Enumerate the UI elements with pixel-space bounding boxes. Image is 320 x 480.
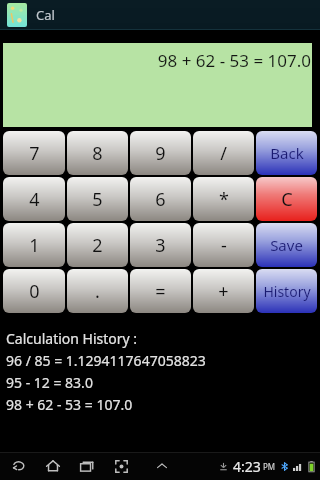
- staticText: /: [220, 141, 227, 166]
- button[interactable]: -: [193, 223, 254, 267]
- staticText: 0: [29, 279, 40, 304]
- button[interactable]: Back: [4, 452, 34, 480]
- staticText: 8: [92, 141, 103, 166]
- button[interactable]: .: [67, 269, 128, 313]
- button[interactable]: 2: [67, 223, 128, 267]
- staticText: 98 + 62 - 53 = 107.0: [6, 395, 133, 414]
- button[interactable]: 8: [67, 131, 128, 175]
- staticText: 98 + 62 - 53 = 107.0: [157, 49, 311, 72]
- button[interactable]: Home: [38, 452, 68, 480]
- staticText: Cal: [36, 6, 55, 24]
- button[interactable]: 1: [3, 223, 65, 267]
- staticText: C: [281, 187, 293, 212]
- staticText: 4: [29, 187, 40, 212]
- staticText: Back: [270, 143, 304, 163]
- button[interactable]: Back: [256, 131, 317, 175]
- button[interactable]: Screenshot: [106, 452, 136, 480]
- staticText: =: [155, 279, 166, 304]
- button[interactable]: C: [256, 177, 317, 221]
- staticText: 96 / 85 = 1.1294117647058823: [6, 351, 206, 370]
- staticText: .: [95, 279, 100, 304]
- staticText: 2: [92, 233, 103, 258]
- button[interactable]: 5: [67, 177, 128, 221]
- button[interactable]: 9: [130, 131, 191, 175]
- button[interactable]: Save: [256, 223, 317, 267]
- staticText: -: [221, 233, 227, 258]
- button[interactable]: 7: [3, 131, 65, 175]
- button[interactable]: =: [130, 269, 191, 313]
- button[interactable]: 4: [3, 177, 65, 221]
- staticText: 6: [155, 187, 166, 212]
- staticText: Save: [270, 235, 303, 255]
- staticText: 5: [92, 187, 103, 212]
- button[interactable]: Recent apps: [72, 452, 102, 480]
- button[interactable]: /: [193, 131, 254, 175]
- button[interactable]: 6: [130, 177, 191, 221]
- button[interactable]: *: [193, 177, 254, 221]
- staticText: 4:23: [233, 457, 261, 476]
- staticText: 95 - 12 = 83.0: [6, 373, 93, 392]
- button[interactable]: 0: [3, 269, 65, 313]
- staticText: +: [218, 279, 229, 304]
- staticText: 1: [29, 233, 40, 258]
- button[interactable]: +: [193, 269, 254, 313]
- staticText: 9: [155, 141, 166, 166]
- button[interactable]: 3: [130, 223, 191, 267]
- staticText: 3: [155, 233, 166, 258]
- staticText: 7: [29, 141, 40, 166]
- button[interactable]: History: [256, 269, 317, 313]
- staticText: PM: [263, 461, 276, 472]
- button[interactable]: Expand: [147, 452, 177, 480]
- staticText: *: [219, 187, 229, 212]
- staticText: History: [263, 282, 311, 301]
- staticText: Calculation History :: [6, 329, 138, 348]
